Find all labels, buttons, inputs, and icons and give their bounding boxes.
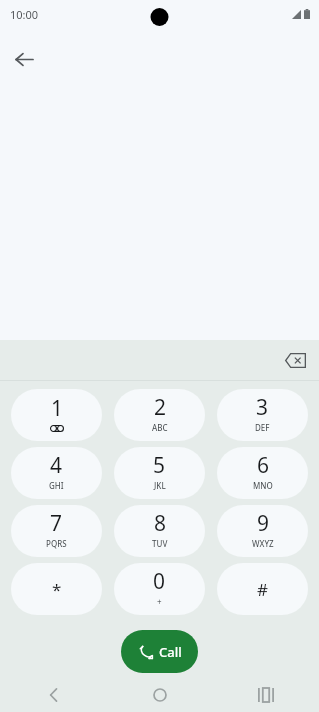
staticText: ABC: [152, 422, 168, 433]
staticText: 6: [257, 451, 270, 480]
staticText: 3: [256, 393, 269, 422]
staticText: 0: [153, 567, 166, 596]
staticText: 4: [50, 451, 63, 480]
staticText: Call: [159, 643, 182, 661]
staticText: 9: [257, 509, 270, 538]
staticText: 8: [154, 509, 167, 538]
button[interactable]: 8: [114, 505, 205, 557]
button[interactable]: 7: [11, 505, 102, 557]
button[interactable]: 5: [114, 447, 205, 499]
button[interactable]: 9: [217, 505, 308, 557]
staticText: +: [157, 596, 162, 607]
button[interactable]: 3: [217, 389, 308, 441]
button[interactable]: Recents: [248, 678, 284, 712]
button[interactable]: Home: [142, 678, 178, 712]
button[interactable]: Back: [36, 678, 72, 712]
staticText: *: [52, 578, 62, 601]
staticText: 5: [153, 451, 166, 480]
staticText: JKL: [154, 480, 166, 491]
staticText: DEF: [255, 422, 270, 433]
staticText: 7: [50, 509, 63, 538]
staticText: PQRS: [46, 538, 67, 549]
staticText: TUV: [152, 538, 168, 549]
staticText: #: [257, 578, 268, 601]
staticText: 10:00: [10, 7, 39, 22]
staticText: WXYZ: [252, 538, 274, 549]
staticText: GHI: [49, 480, 64, 491]
staticText: 2: [154, 393, 167, 422]
button[interactable]: Back: [6, 41, 42, 77]
staticText: 1: [51, 394, 64, 423]
button[interactable]: #: [217, 563, 308, 615]
button[interactable]: Backspace: [277, 342, 313, 378]
staticText: MNO: [253, 480, 273, 491]
button[interactable]: 2: [114, 389, 205, 441]
button[interactable]: 6: [217, 447, 308, 499]
button[interactable]: Call: [121, 630, 198, 673]
button[interactable]: 0: [114, 563, 205, 615]
button[interactable]: *: [11, 563, 102, 615]
button[interactable]: 4: [11, 447, 102, 499]
button[interactable]: 1: [11, 389, 102, 441]
